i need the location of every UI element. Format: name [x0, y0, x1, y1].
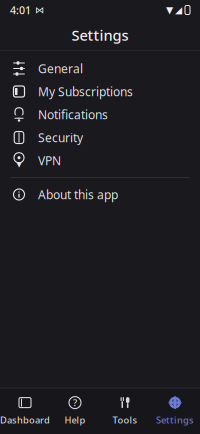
staticText: 4:01	[10, 3, 31, 17]
staticText: Settings	[71, 25, 128, 45]
staticText: Security	[38, 129, 83, 145]
staticText: Tools	[112, 414, 137, 426]
staticText: ◢	[175, 5, 182, 15]
staticText: Notifications	[38, 106, 108, 122]
staticText: ▼	[16, 161, 21, 168]
staticText: VPN	[38, 152, 61, 168]
button[interactable]: ?	[50, 396, 100, 426]
button[interactable]: My Subscriptions	[0, 80, 200, 103]
staticText: General	[38, 60, 83, 76]
button[interactable]: Security	[0, 126, 200, 149]
button[interactable]: General	[0, 57, 200, 80]
button[interactable]: Notifications	[0, 103, 200, 126]
button[interactable]: Tools	[100, 396, 150, 426]
button[interactable]: ▼	[0, 149, 200, 172]
staticText: ▼	[166, 5, 173, 15]
button[interactable]: Settings	[150, 396, 200, 426]
staticText: Settings	[156, 414, 194, 426]
button[interactable]: About this app	[0, 183, 200, 206]
button[interactable]: Dashboard	[0, 396, 50, 426]
staticText: ⋈	[35, 5, 44, 15]
staticText: Dashboard	[0, 414, 50, 426]
staticText: My Subscriptions	[38, 83, 133, 99]
staticText: Help	[64, 414, 85, 426]
staticText: ?	[73, 396, 77, 409]
staticText: About this app	[38, 186, 118, 202]
